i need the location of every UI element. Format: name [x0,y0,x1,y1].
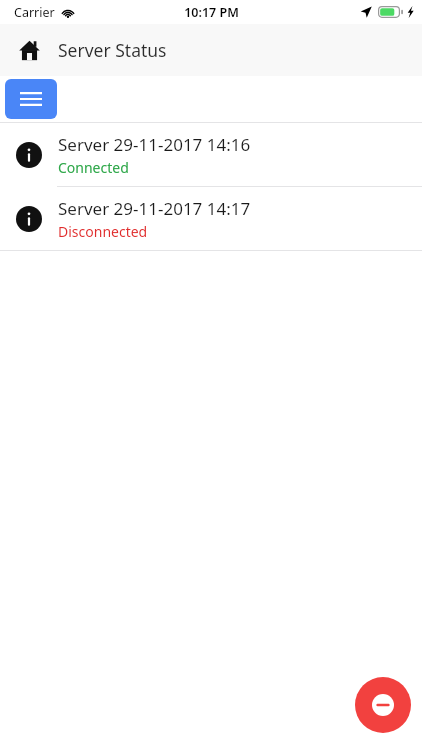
staticText: Carrier [14,4,55,21]
button[interactable]: Remove [355,677,411,733]
staticText: Disconnected [58,222,148,241]
staticText: Connected [58,158,129,177]
button[interactable]: Home [14,35,44,65]
staticText: Server 29-11-2017 14:17 [58,197,251,220]
staticText: Server Status [58,38,167,62]
staticText: 10:17 PM [184,4,239,21]
button[interactable]: Menu [5,79,57,119]
button[interactable]: Server 29-11-2017 14:17 [0,187,422,250]
staticText: Server 29-11-2017 14:16 [58,133,251,156]
button[interactable]: Server 29-11-2017 14:16 [0,123,422,186]
